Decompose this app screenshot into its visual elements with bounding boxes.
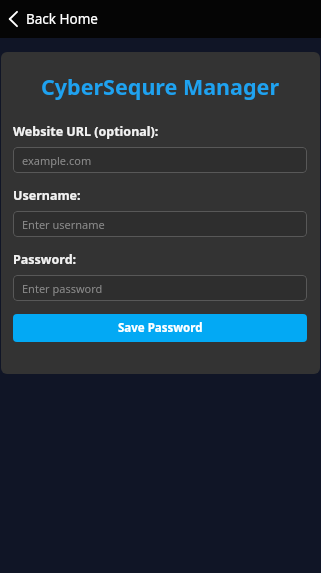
button[interactable]: example.com bbox=[13, 147, 307, 173]
button[interactable]: Enter username bbox=[13, 211, 307, 237]
staticText: Username: bbox=[13, 187, 81, 204]
button[interactable]: Back Home bbox=[0, 6, 108, 32]
staticText: Password: bbox=[13, 251, 77, 268]
staticText: Back Home bbox=[26, 10, 98, 28]
staticText: Enter password bbox=[22, 281, 103, 296]
button[interactable]: Save Password bbox=[13, 314, 307, 342]
staticText: example.com bbox=[22, 153, 92, 168]
staticText: Save Password bbox=[118, 320, 203, 336]
staticText: Website URL (optional): bbox=[13, 123, 159, 140]
staticText: Enter username bbox=[22, 217, 105, 232]
staticText: CyberSequre Manager bbox=[13, 72, 307, 101]
button[interactable]: Enter password bbox=[13, 275, 307, 301]
